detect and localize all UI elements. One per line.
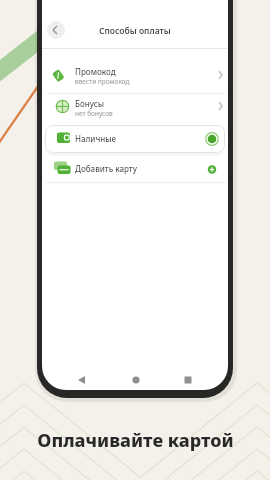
button[interactable]: Наличные: [45, 125, 225, 153]
staticText: Промокод: [75, 66, 116, 77]
staticText: Наличные: [75, 133, 117, 144]
staticText: Бонусы: [75, 98, 105, 109]
staticText: ввести промокод: [75, 77, 130, 86]
button[interactable]: Промокод: [45, 49, 225, 93]
staticText: Способы оплаты: [99, 25, 171, 37]
staticText: Добавить карту: [75, 163, 137, 174]
button[interactable]: Бонусы: [45, 94, 225, 123]
button[interactable]: Добавить карту: [45, 155, 225, 182]
staticText: нет бонусов: [75, 109, 113, 118]
staticText: Оплачивайте картой: [37, 428, 234, 453]
button[interactable]: [47, 21, 65, 39]
